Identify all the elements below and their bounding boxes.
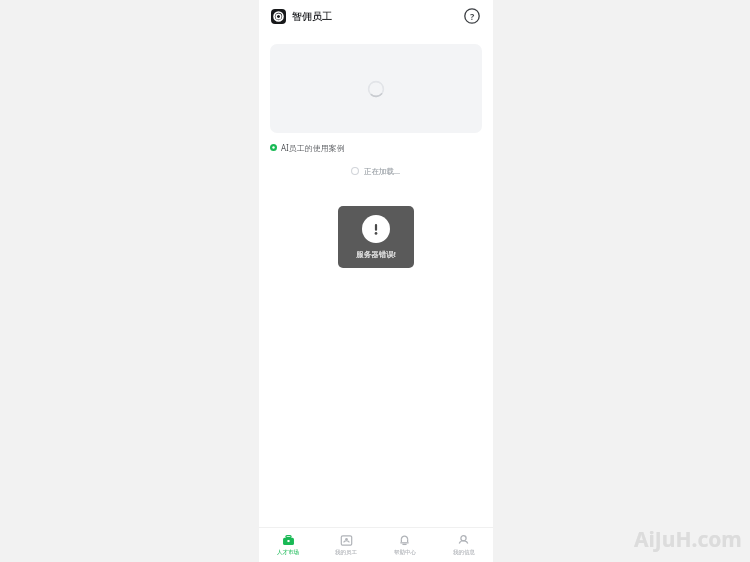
staticText: 服务器错误! (356, 249, 396, 259)
staticText: AI员工的使用案例 (281, 142, 345, 153)
staticText: 智佣员工 (292, 10, 332, 23)
button[interactable]: 我的信息 (434, 531, 493, 559)
button[interactable]: 人才市场 (259, 531, 317, 559)
staticText: 人才市场 (277, 549, 299, 556)
button[interactable]: AI员工的使用案例 (270, 142, 345, 153)
staticText: ? (470, 10, 475, 22)
button[interactable]: 帮助中心 (375, 531, 434, 559)
staticText: AiJuH.com (634, 525, 742, 554)
staticText: 帮助中心 (394, 549, 416, 556)
staticText: 我的员工 (335, 549, 357, 556)
staticText: 我的信息 (453, 549, 475, 556)
staticText: 正在加载... (364, 166, 401, 176)
button[interactable]: 我的员工 (317, 531, 375, 559)
button[interactable]: 帮助 (461, 5, 483, 27)
